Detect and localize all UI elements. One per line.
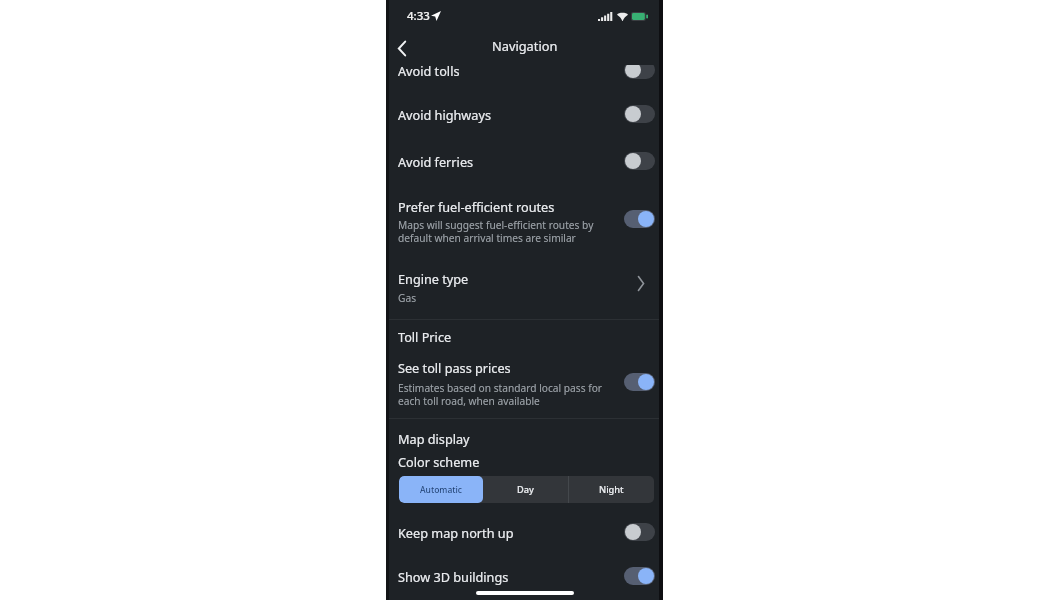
- staticText: Keep map north up: [398, 524, 514, 541]
- staticText: Maps will suggest fuel-efficient routes …: [398, 218, 594, 245]
- button[interactable]: See toll pass prices, on: [624, 373, 655, 391]
- staticText: Map display: [398, 430, 470, 447]
- staticText: Avoid tolls: [398, 65, 460, 79]
- button[interactable]: Back: [389, 35, 415, 61]
- staticText: Color scheme: [398, 453, 480, 470]
- button[interactable]: Keep map north up, off: [624, 523, 655, 541]
- button[interactable]: Automatic: [399, 476, 483, 503]
- button[interactable]: Prefer fuel-efficient routes, on: [624, 210, 655, 228]
- button[interactable]: Avoid highways, off: [624, 105, 655, 123]
- staticText: 4:33: [407, 8, 430, 24]
- button[interactable]: [386, 139, 663, 183]
- button[interactable]: Avoid tolls, off: [624, 65, 655, 79]
- button[interactable]: [386, 188, 663, 250]
- staticText: Engine type: [398, 270, 469, 287]
- button[interactable]: [386, 510, 663, 554]
- button[interactable]: Show 3D buildings, on: [624, 567, 655, 585]
- button[interactable]: Avoid ferries, off: [624, 152, 655, 170]
- staticText: Automatic: [420, 484, 462, 496]
- staticText: Estimates based on standard local pass f…: [398, 381, 603, 408]
- button[interactable]: [386, 554, 663, 598]
- button[interactable]: [386, 349, 663, 411]
- button[interactable]: Night: [569, 476, 654, 503]
- button[interactable]: Engine type: [386, 258, 663, 308]
- button[interactable]: [386, 92, 663, 136]
- staticText: Gas: [398, 291, 417, 305]
- staticText: Navigation: [492, 37, 558, 54]
- button[interactable]: Day: [483, 476, 568, 503]
- staticText: Avoid highways: [398, 106, 491, 123]
- button[interactable]: [386, 65, 663, 92]
- staticText: Day: [517, 483, 534, 496]
- staticText: Prefer fuel-efficient routes: [398, 198, 555, 215]
- staticText: Show 3D buildings: [398, 568, 509, 585]
- staticText: See toll pass prices: [398, 359, 511, 376]
- staticText: Toll Price: [398, 328, 452, 345]
- staticText: Avoid ferries: [398, 153, 474, 170]
- staticText: Night: [599, 483, 624, 496]
